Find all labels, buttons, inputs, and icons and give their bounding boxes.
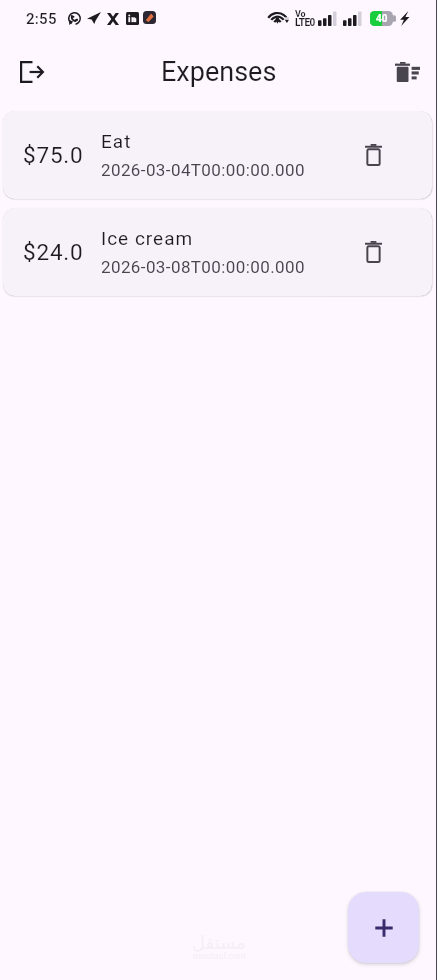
staticText: 2:55 xyxy=(26,10,57,28)
button[interactable]: Delete all xyxy=(383,48,431,96)
staticText: Expenses xyxy=(161,56,277,88)
staticText: Eat xyxy=(101,130,132,152)
button[interactable]: $75.0 xyxy=(3,111,432,199)
staticText: 2026-03-08T00:00:00.000 xyxy=(101,257,305,277)
staticText: Vo xyxy=(295,9,306,20)
button[interactable]: Delete xyxy=(349,228,397,276)
button[interactable]: Logout xyxy=(8,48,56,96)
staticText: Ice cream xyxy=(101,227,194,249)
staticText: $24.0 xyxy=(23,239,84,265)
button[interactable]: Delete xyxy=(349,131,397,179)
button[interactable]: Add expense xyxy=(348,892,419,963)
staticText: LTE0 xyxy=(295,17,315,29)
staticText: 40 xyxy=(376,13,388,25)
staticText: 2026-03-04T00:00:00.000 xyxy=(101,160,305,180)
staticText: $75.0 xyxy=(23,142,84,168)
button[interactable]: $24.0 xyxy=(3,208,432,296)
